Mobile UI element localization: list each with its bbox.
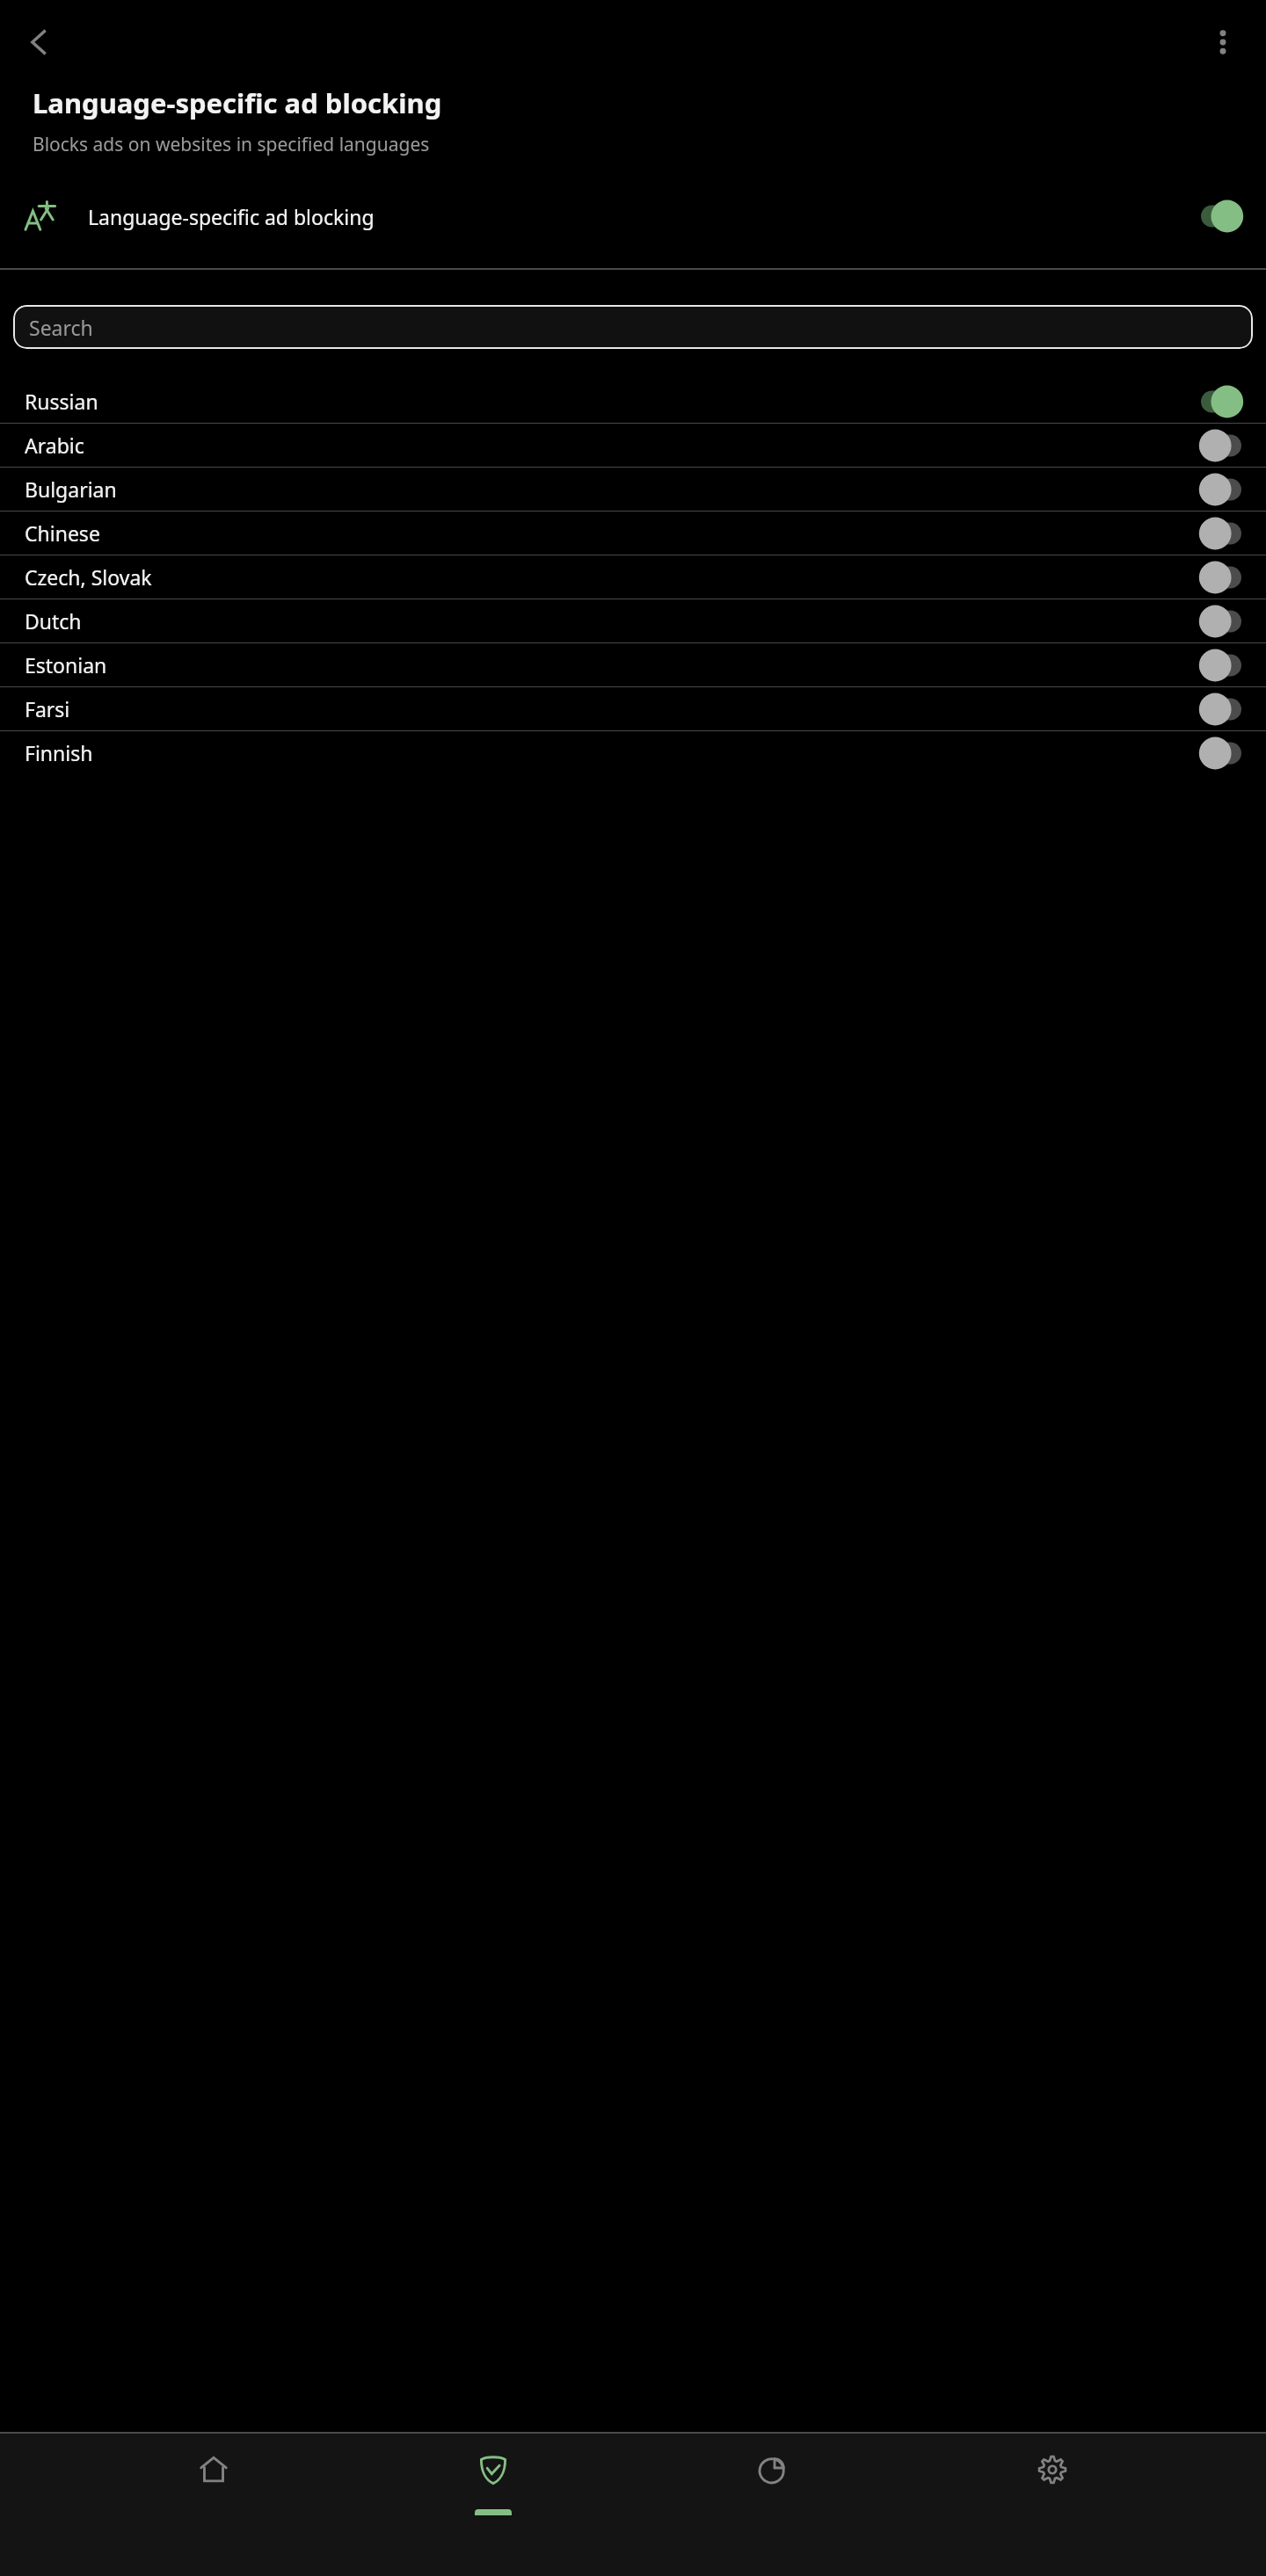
button[interactable]: Russian xyxy=(0,380,1266,423)
button[interactable]: Back xyxy=(12,15,67,69)
button[interactable]: More options xyxy=(1196,15,1250,69)
button[interactable]: Dutch xyxy=(0,599,1266,642)
button[interactable]: Off xyxy=(1201,604,1241,639)
button[interactable]: Farsi xyxy=(0,687,1266,730)
button[interactable]: Off xyxy=(1201,516,1241,551)
button[interactable]: Off xyxy=(1201,428,1241,463)
button[interactable]: Czech, Slovak xyxy=(0,555,1266,599)
button[interactable]: Arabic xyxy=(0,424,1266,467)
button[interactable]: Protection xyxy=(427,2434,559,2515)
button[interactable]: Off xyxy=(1201,560,1241,595)
button[interactable]: On xyxy=(1201,199,1241,234)
button[interactable]: Language-specific ad blocking xyxy=(0,184,1266,249)
button[interactable]: Off xyxy=(1201,692,1241,727)
staticText: Estonian xyxy=(25,651,1201,678)
button[interactable]: Off xyxy=(1201,648,1241,683)
staticText: Arabic xyxy=(25,432,1201,459)
staticText: Farsi xyxy=(25,695,1201,722)
button[interactable]: Finnish xyxy=(0,731,1266,774)
staticText: Blocks ads on websites in specified lang… xyxy=(33,132,430,157)
button[interactable]: Chinese xyxy=(0,512,1266,555)
staticText: Russian xyxy=(25,388,1201,415)
button[interactable]: Off xyxy=(1201,736,1241,771)
button[interactable]: Estonian xyxy=(0,643,1266,686)
button[interactable]: Bulgarian xyxy=(0,468,1266,511)
staticText: Search xyxy=(29,314,93,341)
button[interactable]: On xyxy=(1201,384,1241,419)
button[interactable]: Settings xyxy=(986,2434,1118,2509)
staticText: Chinese xyxy=(25,519,1201,547)
staticText: Language-specific ad blocking xyxy=(33,84,442,121)
button[interactable]: Home xyxy=(148,2434,280,2509)
staticText: Finnish xyxy=(25,739,1201,766)
staticText: Czech, Slovak xyxy=(25,563,1201,591)
staticText: Bulgarian xyxy=(25,475,1201,503)
button[interactable]: Search xyxy=(13,305,1253,349)
button[interactable]: Off xyxy=(1201,472,1241,507)
staticText: Dutch xyxy=(25,607,1201,635)
button[interactable]: Statistics xyxy=(707,2434,839,2509)
staticText: Language-specific ad blocking xyxy=(88,203,1201,230)
